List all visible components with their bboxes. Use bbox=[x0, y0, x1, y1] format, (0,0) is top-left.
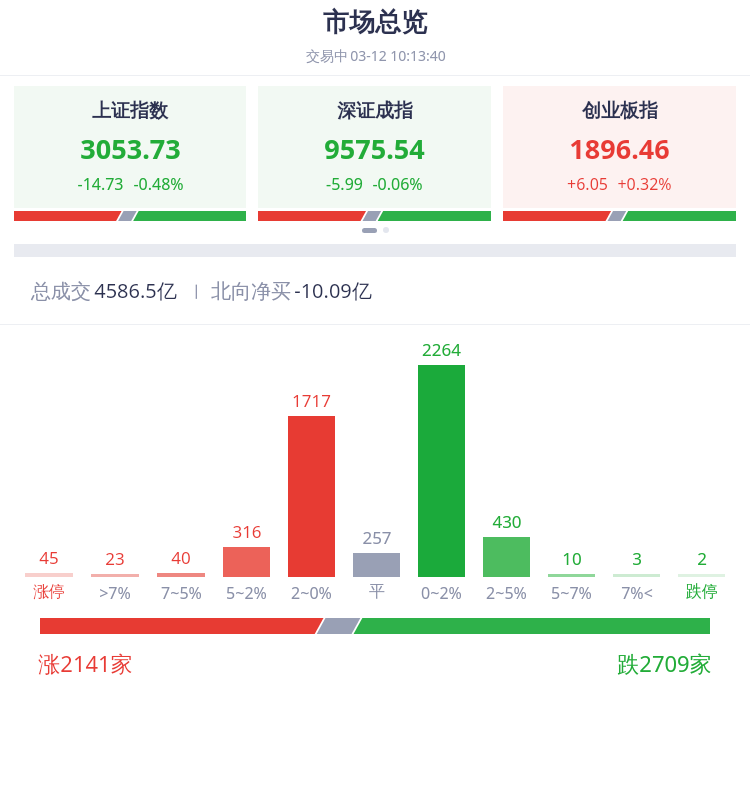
staticText: -5.99 bbox=[326, 173, 363, 195]
button[interactable]: 2264 bbox=[409, 338, 474, 577]
button[interactable]: 257 bbox=[344, 526, 409, 577]
staticText: -0.48% bbox=[133, 173, 184, 195]
staticText: 2 bbox=[697, 547, 707, 570]
staticText: +0.32% bbox=[617, 173, 672, 195]
staticText: 涨2141家 bbox=[38, 648, 133, 678]
staticText: 7~5% bbox=[161, 582, 202, 604]
staticText: 45 bbox=[39, 546, 59, 569]
button[interactable]: 10 bbox=[539, 547, 604, 577]
staticText: 1717 bbox=[292, 389, 331, 412]
staticText: 0~2% bbox=[421, 582, 462, 604]
staticText: >7% bbox=[99, 582, 131, 604]
button[interactable] bbox=[40, 618, 710, 634]
staticText: 257 bbox=[362, 526, 392, 549]
staticText: 上证指数 bbox=[92, 99, 168, 123]
staticText: 丨 bbox=[177, 281, 208, 301]
staticText: 深证成指 bbox=[337, 99, 413, 123]
staticText: -0.06% bbox=[372, 173, 423, 195]
button[interactable]: 创业板指 bbox=[503, 86, 736, 221]
button[interactable]: 总成交 bbox=[28, 277, 750, 304]
staticText: -10.09亿 bbox=[294, 277, 372, 304]
staticText: 跌2709家 bbox=[617, 648, 712, 678]
staticText: 5~2% bbox=[226, 582, 267, 604]
button[interactable] bbox=[383, 227, 389, 233]
staticText: 涨停 bbox=[33, 582, 65, 602]
staticText: 平 bbox=[369, 582, 385, 602]
staticText: 跌停 bbox=[686, 582, 718, 602]
staticText: -14.73 bbox=[77, 173, 124, 195]
staticText: 2264 bbox=[422, 338, 461, 361]
staticText: 创业板指 bbox=[582, 99, 658, 123]
staticText: 7%< bbox=[621, 582, 653, 604]
staticText: 2~0% bbox=[291, 582, 332, 604]
staticText: 9575.54 bbox=[324, 130, 425, 167]
staticText: 交易中 bbox=[304, 46, 350, 65]
staticText: 316 bbox=[232, 520, 262, 543]
staticText: 03-12 10:13:40 bbox=[350, 46, 446, 65]
button[interactable]: 1717 bbox=[279, 389, 344, 577]
button[interactable]: 316 bbox=[214, 520, 279, 577]
button[interactable]: 深证成指 bbox=[258, 86, 491, 221]
staticText: 4586.5亿 bbox=[94, 277, 177, 304]
staticText: 3 bbox=[632, 547, 642, 570]
button[interactable]: 40 bbox=[148, 546, 214, 577]
button[interactable]: 45 bbox=[16, 546, 82, 577]
button[interactable]: 2 bbox=[669, 547, 734, 577]
button[interactable]: 23 bbox=[82, 547, 148, 577]
staticText: 5~7% bbox=[551, 582, 592, 604]
staticText: 10 bbox=[562, 547, 582, 570]
button[interactable]: 3 bbox=[604, 547, 669, 577]
staticText: 3053.73 bbox=[80, 130, 181, 167]
staticText: +6.05 bbox=[567, 173, 608, 195]
button[interactable]: 上证指数 bbox=[14, 86, 246, 221]
staticText: 2~5% bbox=[486, 582, 527, 604]
staticText: 总成交 bbox=[28, 277, 94, 304]
staticText: 北向净买 bbox=[208, 277, 294, 304]
staticText: 430 bbox=[492, 510, 522, 533]
staticText: 市场总览 bbox=[323, 6, 427, 39]
staticText: 23 bbox=[105, 547, 125, 570]
button[interactable] bbox=[362, 228, 377, 233]
staticText: 40 bbox=[171, 546, 191, 569]
staticText: 1896.46 bbox=[569, 130, 670, 167]
button[interactable]: 430 bbox=[474, 510, 539, 577]
